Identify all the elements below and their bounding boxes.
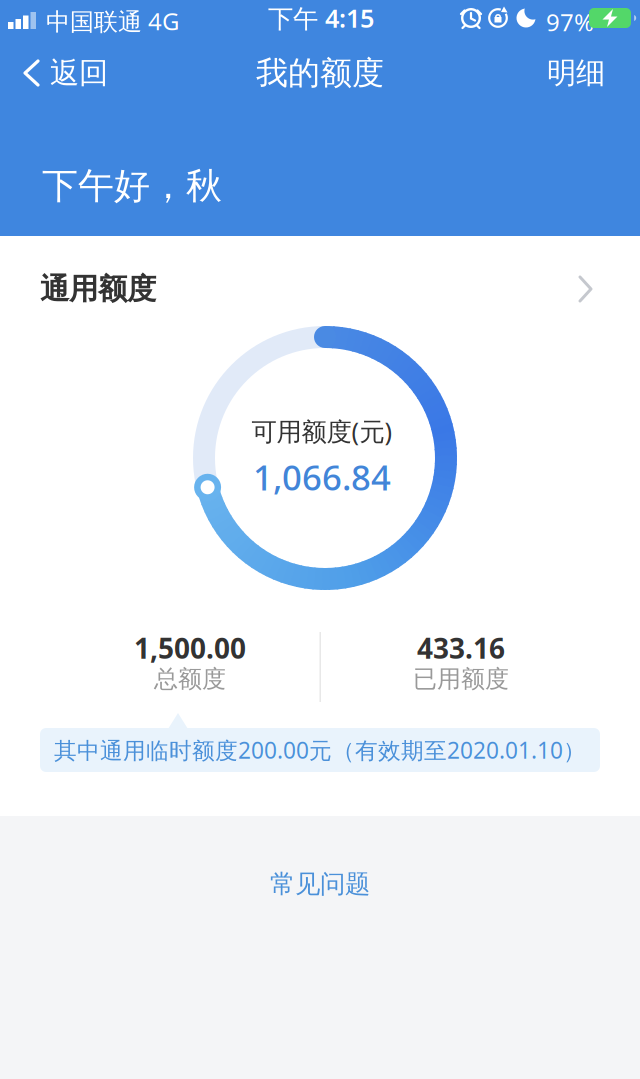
staticText: 1,500.00 <box>134 629 246 667</box>
staticText: 中国联通 4G <box>46 5 179 37</box>
staticText: 下午 4:15 <box>268 1 374 35</box>
staticText: 433.16 <box>417 629 505 667</box>
staticText: 其中通用临时额度200.00元（有效期至2020.01.10） <box>54 735 586 765</box>
staticText: 我的额度 <box>256 53 384 93</box>
staticText: 常见问题 <box>270 868 370 899</box>
staticText: 97% <box>546 6 594 38</box>
button[interactable]: 明细 <box>527 45 625 101</box>
staticText: 下午好，秋 <box>42 164 222 208</box>
button[interactable]: 通用额度 <box>0 265 640 313</box>
button[interactable]: 返回 <box>0 45 118 101</box>
staticText: 返回 <box>50 55 108 91</box>
staticText: 已用额度 <box>413 664 509 694</box>
button[interactable]: 常见问题 <box>220 854 420 914</box>
staticText: 明细 <box>547 55 605 91</box>
staticText: 通用额度 <box>40 271 156 307</box>
staticText: 总额度 <box>154 664 226 694</box>
staticText: 可用额度(元) <box>251 414 392 448</box>
staticText: 1,066.84 <box>253 454 391 500</box>
